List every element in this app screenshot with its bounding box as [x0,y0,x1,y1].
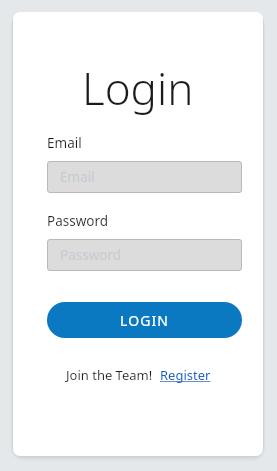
staticText: Password [60,246,122,264]
staticText: Email [60,168,95,186]
staticText: Join the Team! [66,366,153,384]
button[interactable]: LOGIN [47,302,242,338]
staticText: LOGIN [120,311,170,330]
staticText: Login [82,58,194,118]
staticText: Register [160,366,211,384]
button[interactable]: Register [160,366,211,384]
staticText: Password [47,212,109,230]
staticText: Email [47,134,82,152]
button[interactable]: Email [47,161,242,193]
button[interactable]: Password [47,239,242,271]
